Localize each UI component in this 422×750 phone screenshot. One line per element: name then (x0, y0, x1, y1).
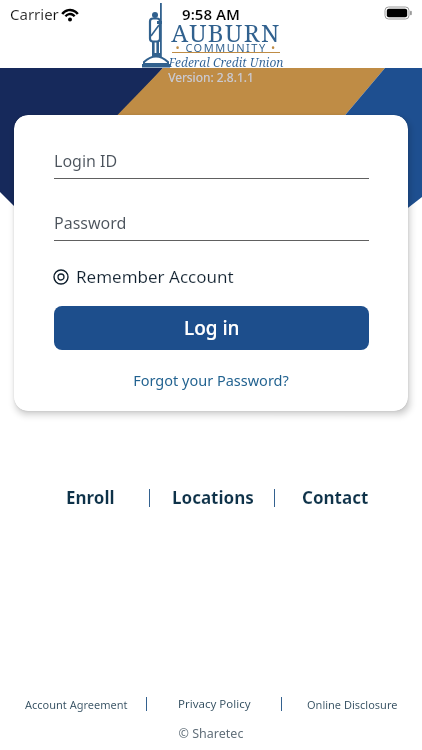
staticText: Federal Credit Union (116, 54, 336, 70)
staticText: Log in (184, 315, 240, 341)
staticText: Login ID (54, 150, 118, 172)
staticText: © Sharetec (0, 725, 422, 742)
staticText: Password (54, 212, 127, 234)
button[interactable]: Log in (54, 306, 369, 350)
staticText: Remember Account (76, 265, 234, 288)
staticText: Carrier (10, 4, 59, 24)
button[interactable]: Enroll (66, 486, 115, 509)
button[interactable]: Account Agreement (25, 697, 128, 712)
staticText: Version: 2.8.1.1 (0, 69, 422, 85)
button[interactable]: Locations (172, 486, 254, 509)
button[interactable]: Remember Account (52, 265, 234, 288)
staticText: 9:58 AM (0, 4, 422, 24)
button[interactable]: Privacy Policy (178, 696, 251, 712)
button[interactable]: Online Disclosure (307, 697, 398, 712)
staticText: • COMMUNITY • (170, 40, 282, 55)
button[interactable]: Contact (302, 486, 369, 509)
button[interactable]: Forgot your Password? (14, 370, 408, 390)
staticText: AUBURN (170, 16, 282, 49)
